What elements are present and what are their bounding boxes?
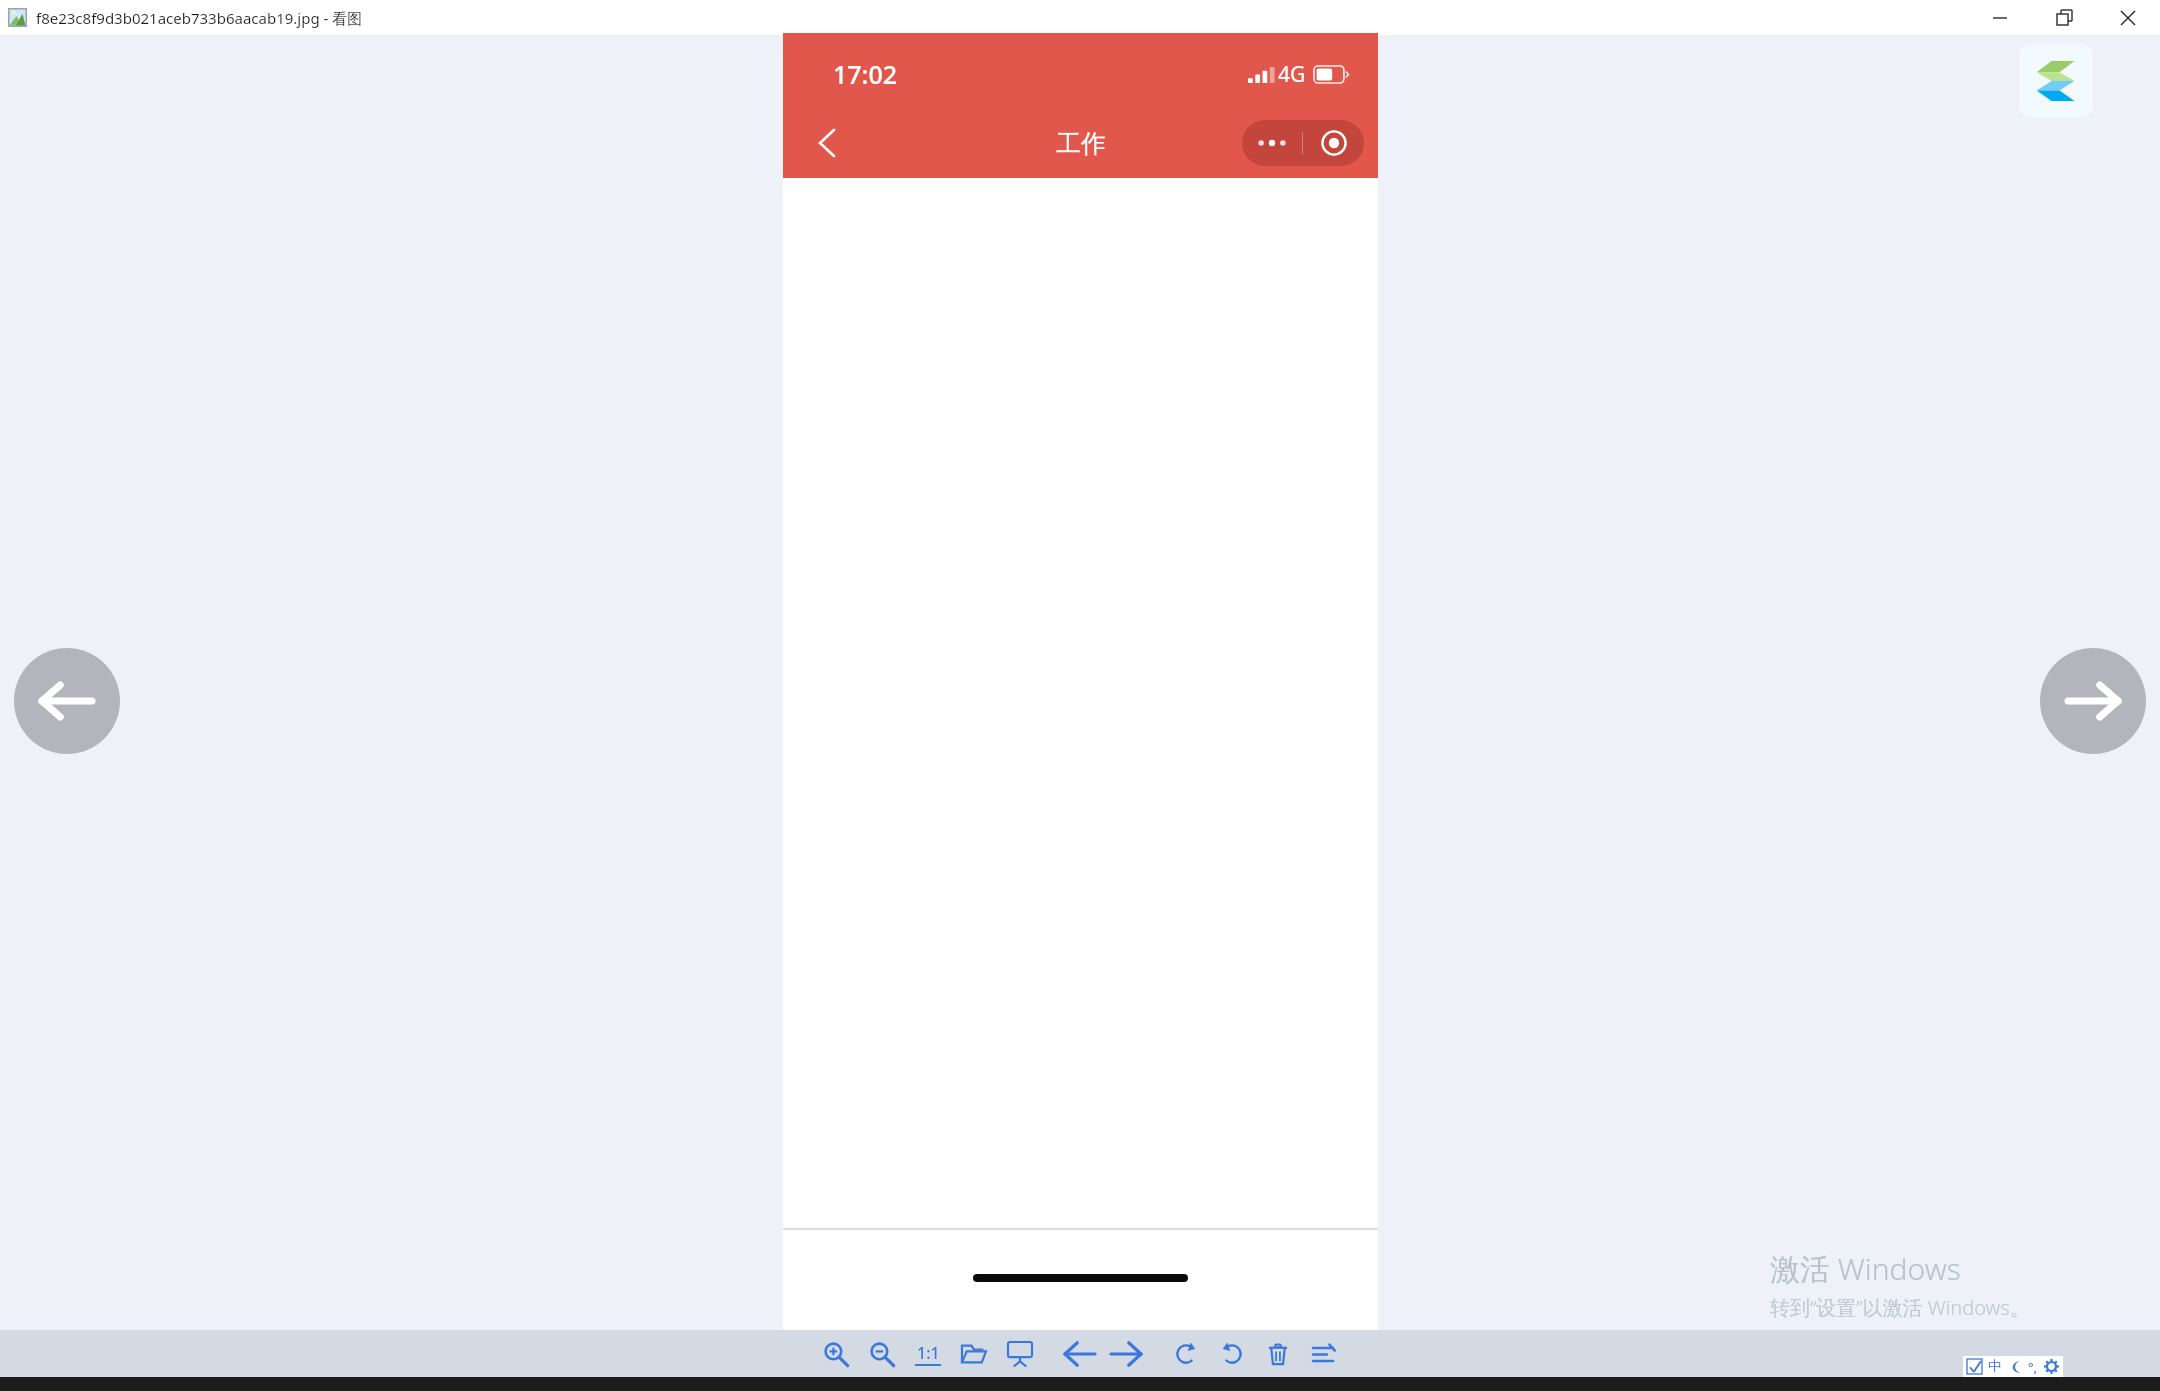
button[interactable]: Back bbox=[799, 108, 855, 178]
staticText: 中 bbox=[1988, 1358, 2002, 1376]
button[interactable]: Actual size bbox=[905, 1331, 951, 1377]
button[interactable]: Close mini program bbox=[1303, 120, 1364, 166]
staticText: f8e23c8f9d3b021aceb733b6aacab19.jpg - 看图 bbox=[36, 8, 363, 28]
staticText: 1:1 bbox=[917, 1342, 940, 1364]
staticText: 4G bbox=[1278, 60, 1306, 89]
staticText: 激活 Windows bbox=[1770, 1248, 1961, 1289]
button[interactable]: Next bbox=[1103, 1331, 1149, 1377]
button[interactable]: Minimize bbox=[1968, 0, 2032, 35]
button[interactable]: Rotate left bbox=[1209, 1331, 1255, 1377]
button[interactable]: Slideshow bbox=[997, 1331, 1043, 1377]
button[interactable]: Rotate right bbox=[1163, 1331, 1209, 1377]
button[interactable]: More bbox=[1242, 120, 1302, 166]
button[interactable]: Zoom in bbox=[813, 1331, 859, 1377]
button[interactable]: More bbox=[1301, 1331, 1347, 1377]
staticText: °, bbox=[2028, 1358, 2038, 1376]
button[interactable]: Zoom out bbox=[859, 1331, 905, 1377]
staticText: 17:02 bbox=[833, 57, 898, 91]
button[interactable]: Close bbox=[2096, 0, 2160, 35]
button[interactable]: Previous image bbox=[14, 648, 120, 754]
button[interactable]: Maximize bbox=[2032, 0, 2096, 35]
button[interactable]: Delete bbox=[1255, 1331, 1301, 1377]
button[interactable]: Application logo bbox=[2019, 44, 2093, 118]
staticText: 工作 bbox=[1056, 128, 1106, 159]
button[interactable]: Previous bbox=[1057, 1331, 1103, 1377]
button[interactable]: Next image bbox=[2040, 648, 2146, 754]
button[interactable]: Open folder bbox=[951, 1331, 997, 1377]
staticText: 转到“设置”以激活 Windows。 bbox=[1770, 1294, 2030, 1321]
